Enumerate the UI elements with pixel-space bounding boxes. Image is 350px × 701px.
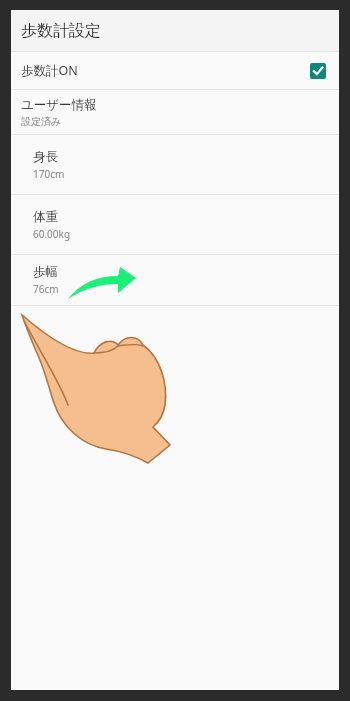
staticText: ユーザー情報 bbox=[21, 97, 97, 113]
staticText: 身長 bbox=[33, 149, 58, 165]
button[interactable]: ユーザー情報 bbox=[11, 90, 339, 134]
staticText: 歩数計設定 bbox=[21, 21, 101, 41]
staticText: 76cm bbox=[33, 282, 59, 296]
staticText: 設定済み bbox=[21, 115, 62, 128]
other: 歩数計ON bbox=[310, 63, 326, 79]
staticText: 歩幅 bbox=[33, 264, 58, 280]
staticText: 体重 bbox=[33, 209, 58, 225]
button[interactable]: 身長 bbox=[11, 135, 339, 194]
staticText: 170cm bbox=[33, 167, 65, 181]
staticText: 60.00kg bbox=[33, 227, 71, 241]
button[interactable]: 歩幅 bbox=[11, 255, 339, 305]
button[interactable]: 歩数計ON bbox=[11, 52, 339, 89]
staticText: 歩数計ON bbox=[21, 62, 310, 79]
button[interactable]: 体重 bbox=[11, 195, 339, 254]
